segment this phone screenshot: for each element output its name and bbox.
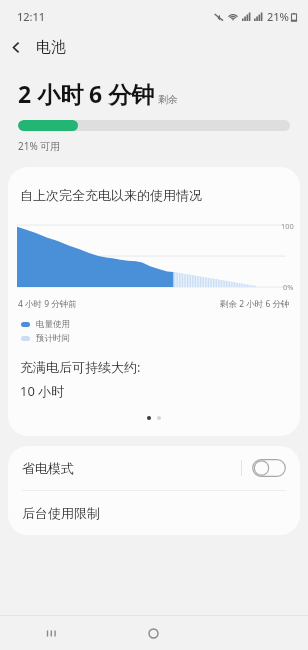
staticText: 0% (283, 282, 294, 292)
staticText: 剩余 2 小时 6 分钟 (220, 298, 290, 310)
staticText: 12:11 (17, 9, 46, 24)
button[interactable]: 后台使用限制 (8, 491, 300, 535)
staticText: 电池 (36, 38, 66, 57)
button[interactable]: 省电模式 (8, 446, 300, 490)
staticText: 剩余 (158, 93, 178, 106)
button[interactable]: Back (0, 32, 32, 62)
staticText: 100 (281, 221, 294, 231)
staticText: 预计时间 (36, 333, 70, 344)
staticText: 10 小时 (20, 382, 65, 400)
staticText: 省电模式 (22, 460, 74, 476)
staticText: 后台使用限制 (22, 505, 100, 521)
button[interactable]: Home (102, 616, 205, 650)
staticText: 21% 可用 (18, 139, 61, 153)
staticText: 2 小时 6 分钟 (18, 78, 155, 109)
button[interactable]: Recents (0, 616, 102, 650)
staticText: 自上次完全充电以来的使用情况 (20, 187, 202, 203)
staticText: 4 小时 9 分钟前 (18, 298, 77, 310)
staticText: 电量使用 (36, 319, 70, 330)
button[interactable]: Power saving toggle, off (252, 459, 286, 477)
staticText: 21% (267, 9, 289, 24)
staticText: 充满电后可持续大约: (20, 358, 141, 376)
